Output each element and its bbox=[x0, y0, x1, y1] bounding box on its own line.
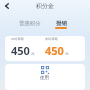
staticText: 已结算额 bbox=[11, 37, 24, 41]
button[interactable]: 使用 bbox=[40, 66, 50, 81]
staticText: 普惠积分 bbox=[19, 20, 41, 27]
button[interactable]: Back bbox=[2, 1, 12, 11]
button[interactable]: 报销 bbox=[55, 20, 67, 29]
staticText: 使用 bbox=[40, 75, 50, 81]
button[interactable]: 普惠积分 bbox=[19, 20, 41, 27]
staticText: 积分金 bbox=[36, 2, 54, 10]
staticText: 元 bbox=[31, 52, 35, 56]
staticText: 未结算额 bbox=[45, 37, 58, 41]
staticText: 报销 bbox=[56, 20, 67, 27]
staticText: 元 bbox=[65, 52, 69, 56]
staticText: 450 bbox=[45, 43, 64, 58]
staticText: 450 bbox=[11, 43, 30, 58]
